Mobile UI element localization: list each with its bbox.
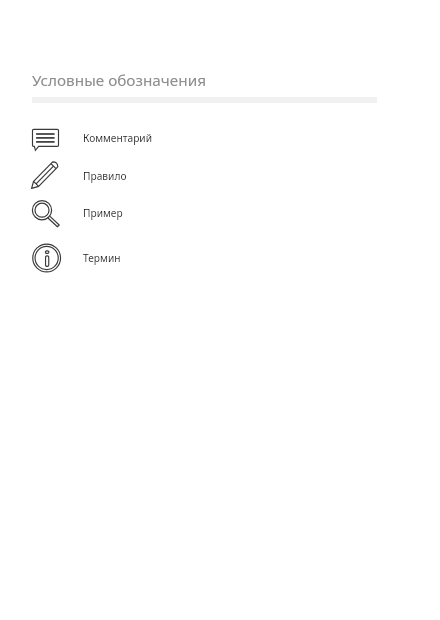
staticText: Условные обозначения: [32, 70, 206, 91]
other: Правило: [28, 160, 64, 196]
other: Комментарий: [28, 118, 64, 154]
button[interactable]: Термин: [0, 238, 440, 278]
other: Термин: [28, 240, 64, 276]
button[interactable]: Комментарий: [0, 117, 440, 157]
staticText: Пример: [83, 206, 123, 220]
staticText: Термин: [83, 251, 121, 265]
button[interactable]: Пример: [0, 193, 440, 233]
staticText: Комментарий: [83, 131, 152, 145]
staticText: Правило: [83, 169, 127, 183]
other: Пример: [28, 195, 64, 231]
button[interactable]: Правило: [0, 157, 440, 197]
